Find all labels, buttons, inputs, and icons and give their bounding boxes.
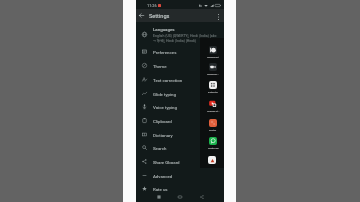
staticText: Search bbox=[153, 146, 167, 151]
staticText: Screenshot bbox=[207, 56, 219, 59]
button[interactable]: WhatsApp bbox=[202, 137, 224, 150]
staticText: Advanced bbox=[153, 174, 173, 179]
button[interactable]: Clipboard bbox=[136, 114, 224, 128]
button[interactable]: Search bbox=[136, 141, 224, 155]
staticText: Rate us bbox=[153, 187, 168, 192]
button[interactable]: Languages bbox=[136, 26, 224, 43]
staticText: Photos bbox=[209, 129, 217, 132]
staticText: English (US) [QWERTY], Hindi (India) [ab… bbox=[153, 34, 217, 38]
button[interactable]: Text correction bbox=[136, 73, 224, 87]
staticText: Screenrec... bbox=[207, 73, 220, 76]
button[interactable]: Glide typing bbox=[136, 87, 224, 101]
button[interactable]: Rate us bbox=[136, 182, 224, 196]
button[interactable]: Navigate up bbox=[136, 10, 147, 21]
staticText: Theme bbox=[153, 64, 167, 69]
staticText: Text correction bbox=[153, 78, 183, 83]
button[interactable]: Preferences bbox=[136, 45, 224, 59]
staticText: Channel st... bbox=[207, 110, 220, 113]
staticText: Dictionary bbox=[153, 133, 173, 138]
button[interactable]: Photos bbox=[202, 119, 224, 132]
staticText: Voice typing bbox=[153, 105, 177, 110]
button[interactable]: Voice typing bbox=[136, 100, 224, 114]
button[interactable]: More options bbox=[213, 11, 224, 22]
staticText: Clipboard bbox=[153, 119, 172, 124]
staticText: Languages bbox=[153, 27, 175, 32]
button[interactable]: Screenshot bbox=[202, 46, 224, 59]
button[interactable]: Recent apps bbox=[154, 191, 163, 200]
staticText: Share Gboard bbox=[153, 160, 180, 165]
staticText: Preferences bbox=[153, 50, 177, 55]
button[interactable]: Dictionary bbox=[136, 128, 224, 142]
staticText: 11:26 bbox=[147, 3, 157, 8]
button[interactable]: Back bbox=[197, 191, 206, 200]
staticText: WhatsApp bbox=[208, 147, 219, 150]
button[interactable]: Channel st... bbox=[202, 100, 224, 113]
staticText: Instructor bbox=[208, 91, 218, 94]
staticText: Settings bbox=[149, 13, 170, 20]
button[interactable]: App shortcut bbox=[208, 156, 216, 164]
staticText: → हिन्दी], Hindi (India) [Hindi] bbox=[153, 38, 196, 43]
button[interactable]: Home bbox=[175, 191, 184, 200]
staticText: Glide typing bbox=[153, 92, 176, 97]
button[interactable]: Instructor bbox=[202, 81, 224, 94]
button[interactable]: Theme bbox=[136, 59, 224, 73]
button[interactable]: Share Gboard bbox=[136, 155, 224, 169]
button[interactable]: Screenrec... bbox=[202, 63, 224, 76]
button[interactable]: Advanced bbox=[136, 169, 224, 183]
